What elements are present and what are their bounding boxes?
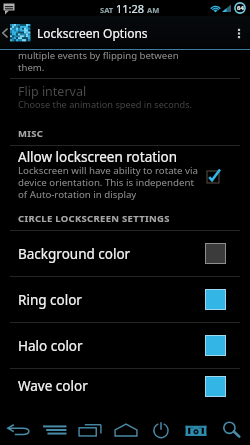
button[interactable]: Menu	[38, 403, 71, 445]
button[interactable]: Allow lockscreen rotation	[0, 146, 250, 202]
button[interactable]: Home	[109, 403, 142, 445]
staticText: 11:28	[116, 1, 145, 16]
staticText: Background color	[18, 245, 131, 263]
button[interactable]: Back	[2, 403, 35, 445]
staticText: Halo color	[18, 337, 83, 355]
button[interactable]: More options	[228, 16, 250, 49]
staticText: SAT	[100, 5, 114, 15]
staticText: Wave color	[18, 377, 88, 395]
staticText: Allow lockscreen rotation	[18, 148, 178, 166]
staticText: Flip interval	[18, 83, 87, 100]
button[interactable]: Halo color	[0, 323, 250, 368]
button[interactable]: Power	[144, 403, 177, 445]
staticText: CIRCLE LOCKSCREEN SETTINGS	[18, 212, 170, 225]
staticText: AM	[147, 5, 160, 15]
staticText: Lockscreen Options	[37, 25, 148, 41]
button[interactable]	[0, 16, 30, 49]
button[interactable]: Search	[215, 403, 248, 445]
button[interactable]: Flip interval	[0, 79, 250, 145]
staticText: multiple events by flipping between them…	[18, 49, 179, 74]
staticText: 64	[237, 4, 244, 12]
button[interactable]: Recent apps	[73, 403, 106, 445]
button[interactable]: multiple events by flipping between them…	[0, 50, 250, 78]
button[interactable]: Wave color	[0, 369, 250, 403]
button[interactable]: Camera	[179, 403, 212, 445]
staticText: MISC	[18, 127, 44, 140]
staticText: Lockscreen will have ability to rotate v…	[18, 164, 198, 201]
button[interactable]: Background color	[0, 231, 250, 276]
button[interactable]: Ring color	[0, 277, 250, 322]
staticText: Choose the animation speed in seconds.	[18, 98, 193, 111]
staticText: Ring color	[18, 291, 82, 309]
